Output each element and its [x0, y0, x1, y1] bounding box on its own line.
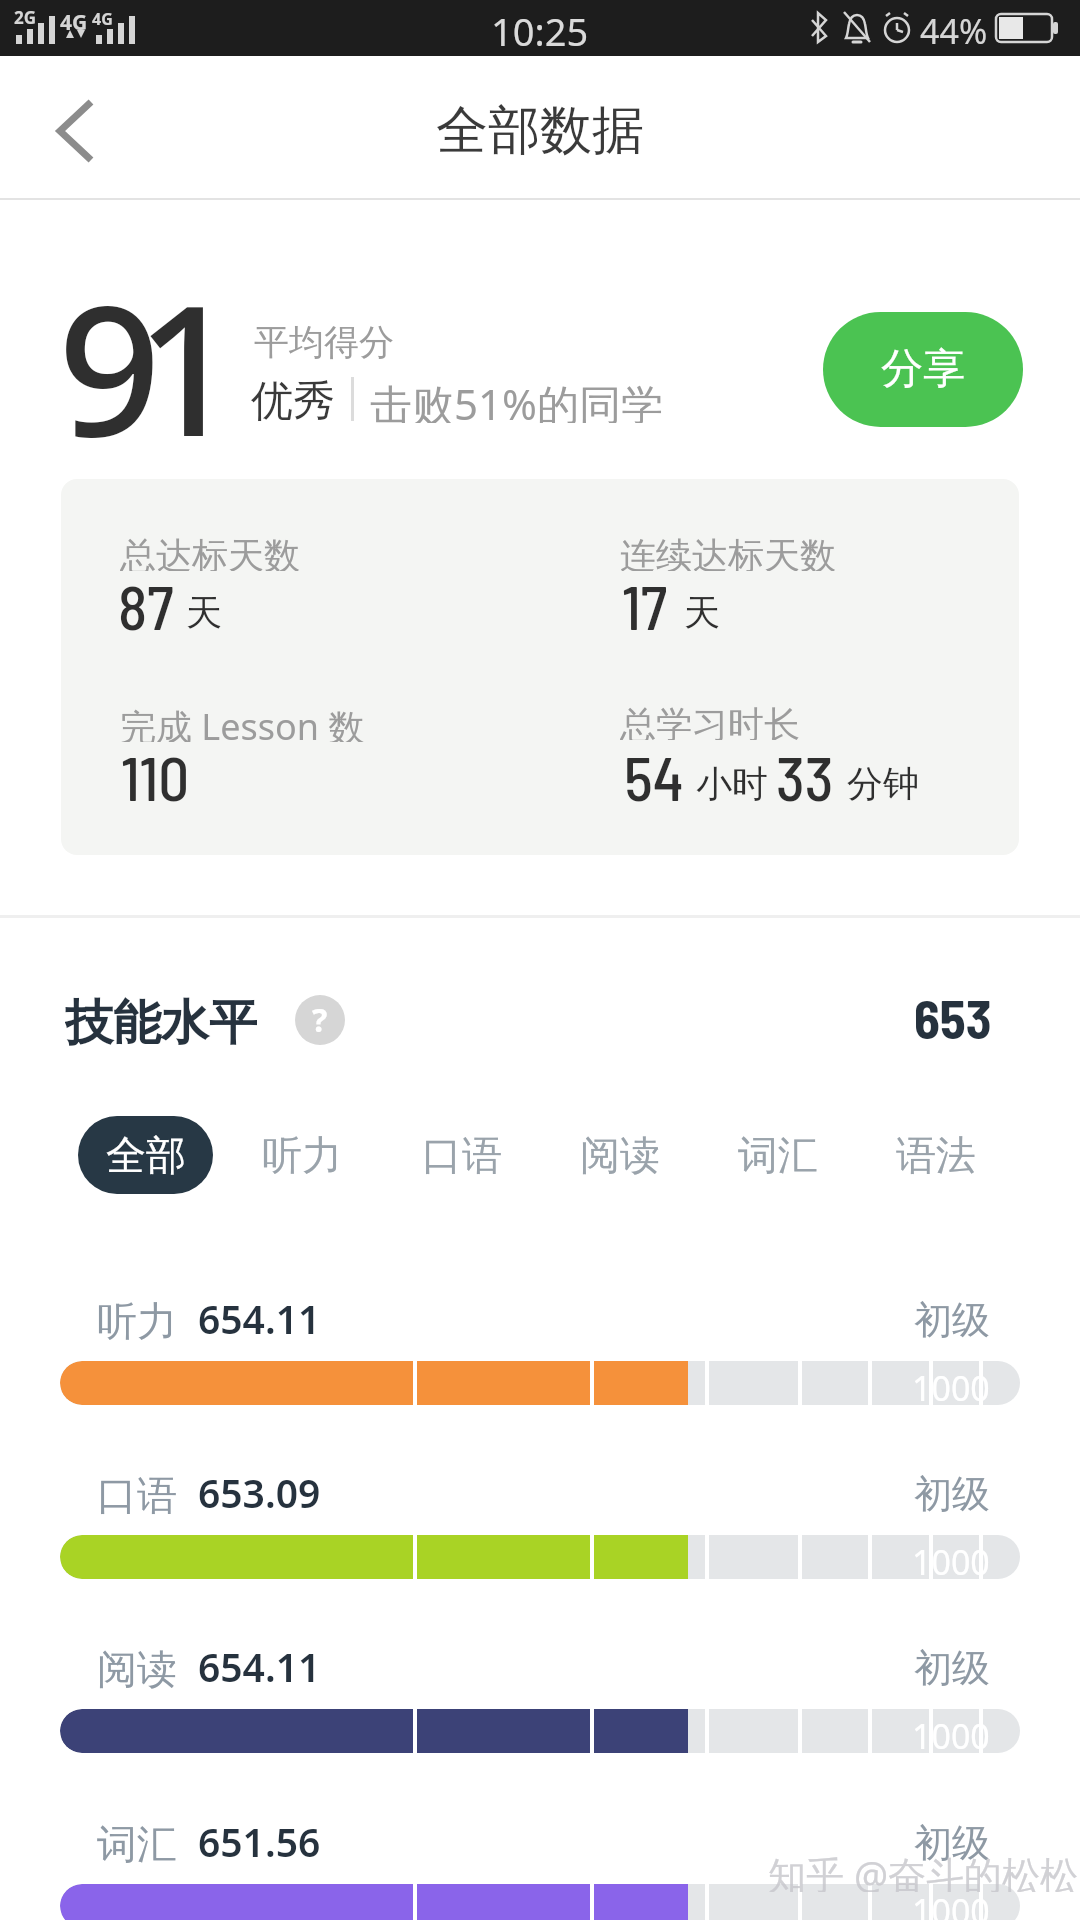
staticText: 10:25	[491, 5, 589, 51]
button[interactable]: 听力	[262, 1116, 342, 1194]
staticText: 平均得分	[254, 320, 394, 360]
staticText: 初级	[914, 1644, 990, 1692]
staticText: 654.11	[198, 1640, 321, 1688]
staticText: 4G	[92, 8, 113, 28]
staticText: 1000	[912, 1888, 990, 1920]
staticText: 初级	[914, 1296, 990, 1344]
staticText: 口语	[97, 1470, 177, 1518]
button[interactable]: 词汇	[738, 1116, 818, 1194]
staticText: 653.09	[198, 1466, 321, 1514]
staticText: 连续达标天数	[620, 533, 836, 571]
staticText: 1000	[912, 1713, 990, 1749]
staticText: 1000	[912, 1539, 990, 1575]
staticText: 总达标天数	[120, 533, 300, 571]
staticText: 1000	[912, 1365, 990, 1401]
staticText: 全部数据	[436, 98, 644, 158]
staticText: 听力	[262, 1130, 342, 1180]
staticText: 口语	[422, 1130, 502, 1180]
staticText: 654.11	[198, 1292, 321, 1340]
staticText: 完成 Lesson 数	[120, 702, 365, 742]
staticText: 技能水平	[65, 993, 257, 1047]
staticText: 2G	[14, 6, 37, 26]
button[interactable]	[30, 91, 120, 171]
staticText: 4G	[60, 8, 88, 34]
staticText: 听力	[97, 1296, 177, 1344]
staticText: 87	[118, 569, 174, 642]
staticText: 词汇	[738, 1130, 818, 1180]
staticText: 653	[914, 986, 992, 1048]
staticText: 优秀	[251, 375, 335, 423]
staticText: 44%	[920, 8, 988, 48]
staticText: 语法	[896, 1130, 976, 1180]
staticText: 小时	[696, 761, 768, 806]
staticText: 9	[58, 244, 161, 489]
staticText: 651.56	[198, 1815, 321, 1863]
button[interactable]: 口语	[422, 1116, 502, 1194]
staticText: 初级	[914, 1470, 990, 1518]
staticText: 全部	[106, 1130, 186, 1180]
staticText: 17	[622, 569, 668, 642]
staticText: 初级	[914, 1819, 990, 1867]
staticText: ?	[312, 998, 328, 1042]
staticText: 击败51%的同学	[370, 375, 663, 423]
staticText: 总学习时长	[620, 702, 800, 740]
staticText: 词汇	[97, 1819, 177, 1867]
staticText: 阅读	[97, 1644, 177, 1692]
button[interactable]: 语法	[896, 1116, 976, 1194]
button[interactable]: 分享	[823, 312, 1023, 427]
staticText: 110	[121, 740, 190, 813]
button[interactable]: 阅读	[580, 1116, 660, 1194]
staticText: 天	[186, 590, 222, 635]
staticText: 知乎 @奋斗的松松	[768, 1848, 1079, 1892]
staticText: 54	[624, 740, 684, 813]
button[interactable]: ?	[295, 995, 345, 1045]
staticText: 1	[136, 244, 239, 489]
staticText: 分享	[881, 343, 965, 396]
staticText: 33	[776, 740, 834, 813]
staticText: 阅读	[580, 1130, 660, 1180]
staticText: 天	[684, 590, 720, 635]
button[interactable]: 全部	[78, 1116, 213, 1194]
staticText: 分钟	[847, 761, 919, 806]
